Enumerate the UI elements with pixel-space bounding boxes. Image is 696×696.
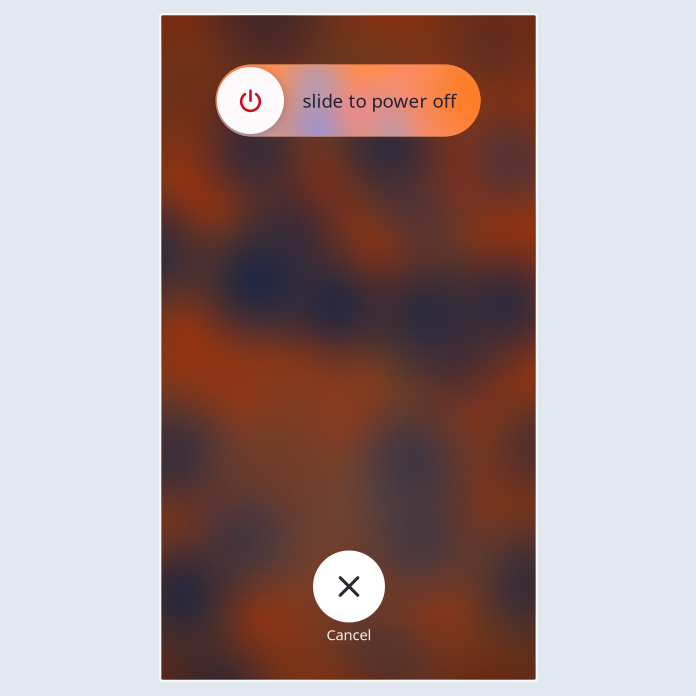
button[interactable]: slide to power off (215, 64, 480, 136)
button[interactable]: Cancel (301, 550, 397, 646)
staticText: slide to power off (302, 88, 456, 113)
staticText: Cancel (326, 625, 371, 644)
